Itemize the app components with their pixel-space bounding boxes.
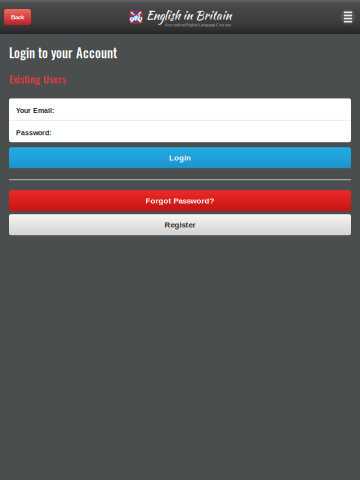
button[interactable]: Register	[9, 214, 351, 235]
button[interactable]: Back	[4, 9, 31, 25]
button[interactable]: Forgot Password?	[9, 190, 351, 211]
button[interactable]: Login	[9, 147, 351, 168]
staticText: Back	[11, 14, 24, 20]
staticText: eib	[129, 14, 142, 23]
staticText: Existing Users	[9, 71, 66, 86]
staticText: Your Email:	[16, 107, 54, 114]
staticText: English in Britain	[146, 7, 231, 24]
staticText: Login	[169, 153, 191, 162]
button[interactable]: Menu	[338, 7, 358, 27]
staticText: Register	[164, 220, 195, 229]
staticText: Password:	[16, 129, 51, 137]
staticText: Forgot Password?	[145, 196, 214, 205]
staticText: Accredited English Language Courses	[165, 23, 231, 27]
staticText: Login to your Account	[9, 43, 117, 62]
